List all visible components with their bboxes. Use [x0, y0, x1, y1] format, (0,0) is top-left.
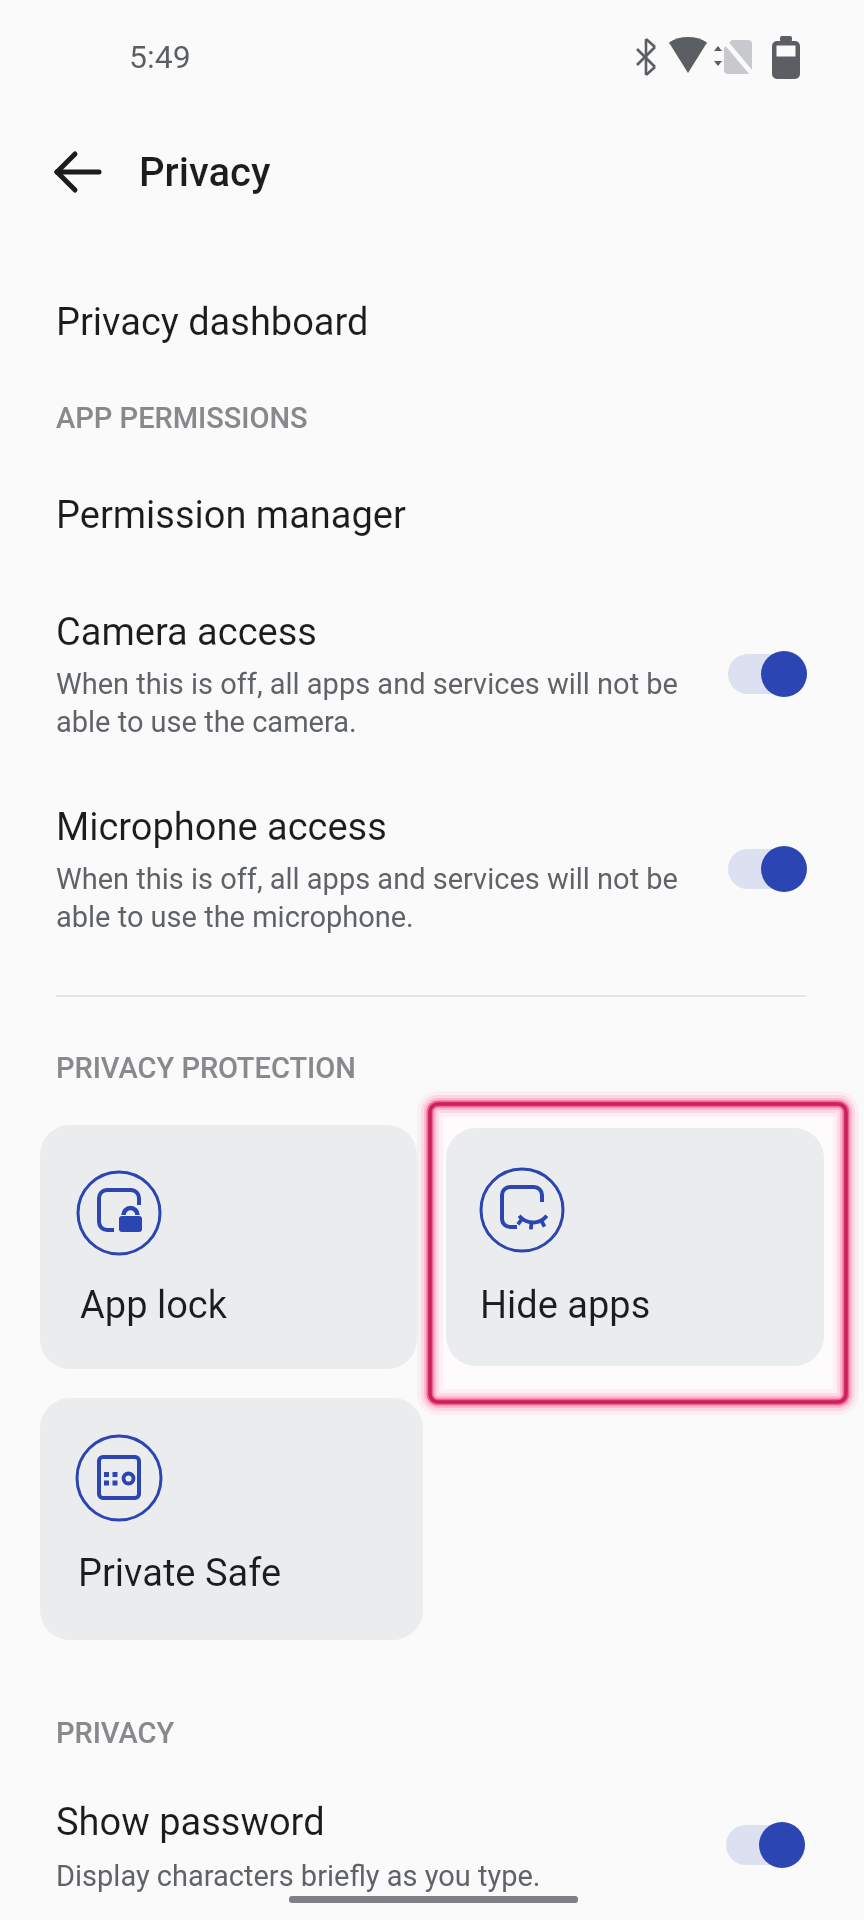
staticText: Hide apps: [480, 1283, 651, 1328]
button[interactable]: [728, 849, 806, 889]
button[interactable]: Microphone access: [56, 801, 656, 853]
staticText: App lock: [80, 1283, 227, 1328]
staticText: Private Safe: [78, 1551, 282, 1596]
staticText: Camera access: [56, 610, 317, 655]
button[interactable]: [54, 152, 102, 192]
staticText: When this is off, all apps and services …: [56, 862, 678, 934]
button[interactable]: Hide apps: [446, 1128, 824, 1366]
button[interactable]: App lock: [40, 1125, 417, 1369]
staticText: Display characters briefly as you type.: [56, 1859, 541, 1893]
staticText: Privacy: [139, 149, 271, 196]
button[interactable]: Show password: [56, 1796, 656, 1848]
staticText: Show password: [56, 1800, 325, 1845]
button[interactable]: Private Safe: [40, 1398, 423, 1640]
staticText: APP PERMISSIONS: [56, 401, 308, 435]
staticText: 5:49: [129, 38, 191, 76]
button[interactable]: Permission manager: [56, 489, 656, 541]
button[interactable]: Camera access: [56, 606, 656, 658]
staticText: PRIVACY: [56, 1716, 175, 1750]
staticText: Permission manager: [56, 493, 406, 538]
staticText: Privacy dashboard: [56, 300, 369, 345]
staticText: PRIVACY PROTECTION: [56, 1051, 356, 1085]
button[interactable]: [728, 654, 806, 694]
button[interactable]: [726, 1825, 804, 1865]
staticText: When this is off, all apps and services …: [56, 667, 678, 739]
staticText: Microphone access: [56, 805, 387, 850]
button[interactable]: Privacy dashboard: [56, 296, 656, 348]
